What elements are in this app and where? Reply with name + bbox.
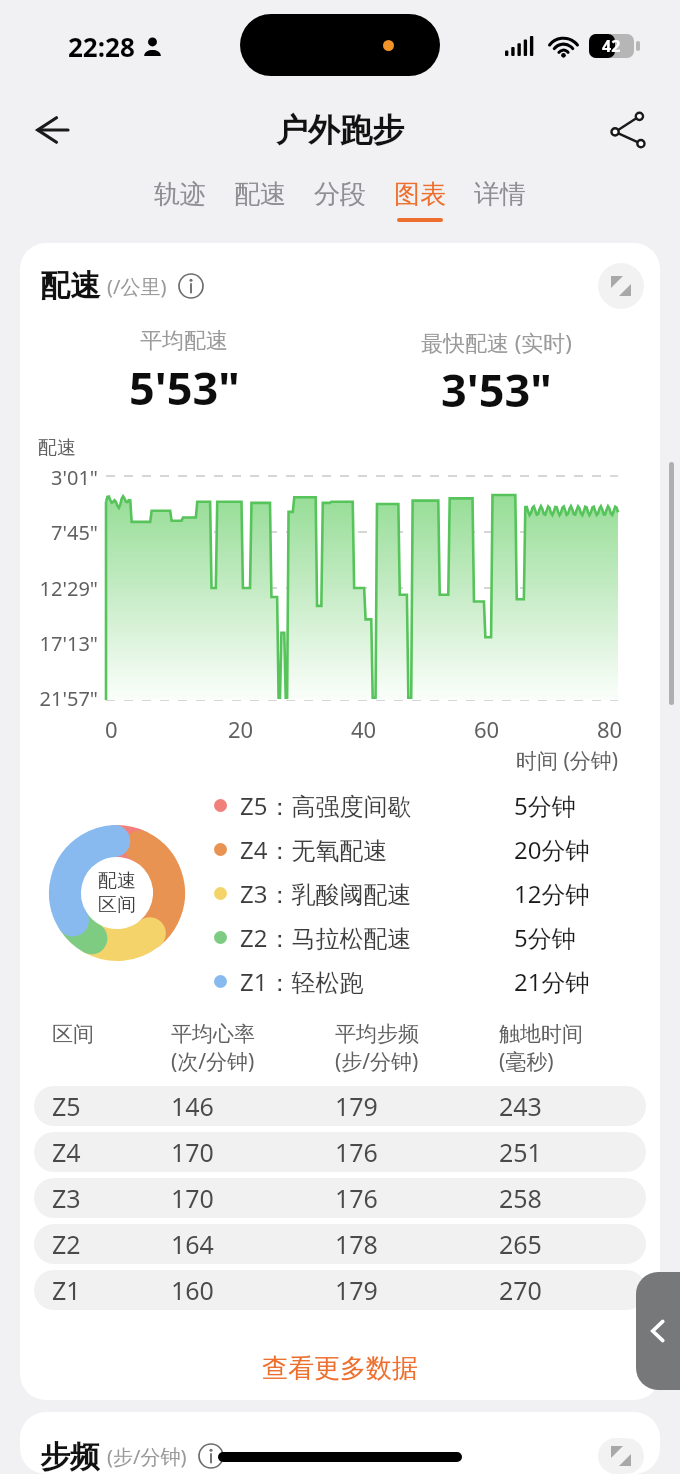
button[interactable]: 轨迹 <box>154 178 206 222</box>
button[interactable]: Z3 <box>34 1178 646 1218</box>
button[interactable]: 详情 <box>474 178 526 222</box>
staticText: 22:28 <box>68 29 135 64</box>
button[interactable]: 图表 <box>394 178 446 222</box>
staticText: 80 <box>597 714 623 744</box>
staticText: 179 <box>335 1089 499 1123</box>
staticText: 170 <box>171 1181 335 1215</box>
button[interactable]: Z4：无氧配速 <box>214 827 644 871</box>
staticText: 时间 (分钟) <box>20 746 618 775</box>
button[interactable]: Z4 <box>34 1132 646 1172</box>
staticText: 270 <box>499 1273 646 1307</box>
staticText: 3'01" <box>28 464 98 491</box>
staticText: 164 <box>171 1227 335 1261</box>
staticText: (/公里) <box>107 273 167 300</box>
staticText: Z3：乳酸阈配速 <box>240 877 514 910</box>
staticText: 176 <box>335 1135 499 1169</box>
staticText: 步频 <box>40 1438 100 1474</box>
staticText: Z1：轻松跑 <box>240 965 514 998</box>
staticText: 243 <box>499 1089 646 1123</box>
staticText: 配速 <box>234 178 286 211</box>
staticText: 触地时间 <box>499 1021 583 1047</box>
staticText: Z1 <box>52 1273 171 1307</box>
staticText: 21分钟 <box>514 965 644 998</box>
button[interactable]: Z3：乳酸阈配速 <box>214 871 644 915</box>
staticText: 5分钟 <box>514 789 644 822</box>
staticText: 分段 <box>314 178 366 211</box>
staticText: 12分钟 <box>514 877 644 910</box>
staticText: Z2 <box>52 1227 171 1261</box>
staticText: 轨迹 <box>154 178 206 211</box>
button[interactable]: 分段 <box>314 178 366 222</box>
staticText: 5'53" <box>129 357 240 418</box>
staticText: Z4：无氧配速 <box>240 833 514 866</box>
staticText: Z2：马拉松配速 <box>240 921 514 954</box>
staticText: 17'13" <box>28 630 98 657</box>
staticText: 图表 <box>394 178 446 211</box>
staticText: 178 <box>335 1227 499 1261</box>
button[interactable]: 配速 <box>234 178 286 222</box>
button[interactable]: Share <box>598 100 658 160</box>
staticText: 配速 <box>38 436 76 460</box>
staticText: 配速 <box>98 869 136 893</box>
staticText: 5分钟 <box>514 921 644 954</box>
button[interactable]: Z5 <box>34 1086 646 1126</box>
button[interactable]: Z2：马拉松配速 <box>214 915 644 959</box>
staticText: 20 <box>228 714 254 744</box>
staticText: (次/分钟) <box>171 1047 255 1076</box>
staticText: 区间 <box>98 893 136 917</box>
staticText: 170 <box>171 1135 335 1169</box>
staticText: 160 <box>171 1273 335 1307</box>
staticText: 最快配速 (实时) <box>421 327 572 357</box>
staticText: 20分钟 <box>514 833 644 866</box>
staticText: 平均配速 <box>140 327 228 355</box>
staticText: 详情 <box>474 178 526 211</box>
staticText: 179 <box>335 1273 499 1307</box>
staticText: 251 <box>499 1135 646 1169</box>
staticText: 146 <box>171 1089 335 1123</box>
staticText: Z3 <box>52 1181 171 1215</box>
staticText: Z5：高强度间歇 <box>240 789 514 822</box>
staticText: 0 <box>105 714 118 744</box>
button[interactable]: Back <box>20 100 80 160</box>
staticText: Z4 <box>52 1135 171 1169</box>
staticText: 7'45" <box>28 519 98 546</box>
button[interactable]: Open side panel <box>636 1272 680 1390</box>
staticText: 40 <box>351 714 377 744</box>
button[interactable]: Z1 <box>34 1270 646 1310</box>
button[interactable]: Info <box>196 1441 226 1471</box>
staticText: 配速 <box>40 267 100 305</box>
staticText: 60 <box>474 714 500 744</box>
staticText: 21'57" <box>28 685 98 712</box>
staticText: (毫秒) <box>499 1047 554 1076</box>
staticText: 查看更多数据 <box>262 1352 418 1385</box>
staticText: Z5 <box>52 1089 171 1123</box>
staticText: 3'53" <box>441 359 552 420</box>
staticText: 265 <box>499 1227 646 1261</box>
button[interactable]: Expand chart <box>598 1438 644 1474</box>
staticText: 12'29" <box>28 575 98 602</box>
staticText: (步/分钟) <box>107 1443 187 1470</box>
staticText: 42 <box>602 35 621 57</box>
button[interactable]: Z1：轻松跑 <box>214 959 644 1003</box>
staticText: 区间 <box>52 1021 171 1047</box>
button[interactable]: Z5：高强度间歇 <box>214 783 644 827</box>
staticText: 258 <box>499 1181 646 1215</box>
staticText: 平均步频 <box>335 1021 419 1047</box>
button[interactable]: Info <box>176 271 206 301</box>
button[interactable]: 查看更多数据 <box>20 1336 660 1400</box>
button[interactable]: Z2 <box>34 1224 646 1264</box>
staticText: 户外跑步 <box>276 110 404 150</box>
button[interactable]: Expand chart <box>598 263 644 309</box>
staticText: 平均心率 <box>171 1021 255 1047</box>
staticText: (步/分钟) <box>335 1047 419 1076</box>
staticText: 176 <box>335 1181 499 1215</box>
